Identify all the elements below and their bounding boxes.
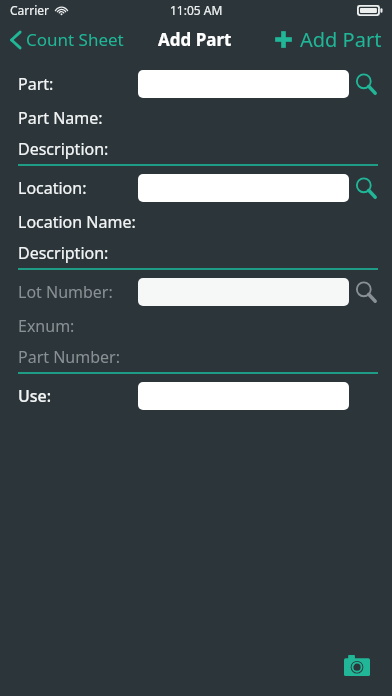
button[interactable]: Search Location:: [355, 177, 377, 199]
staticText: Count Sheet: [26, 28, 124, 51]
staticText: Lot Number:: [18, 281, 113, 303]
button[interactable]: Scan with camera: [340, 648, 374, 682]
button[interactable]: [138, 70, 349, 98]
staticText: Add Part: [158, 28, 232, 51]
staticText: Part Name:: [18, 107, 103, 129]
staticText: Add Part: [300, 26, 382, 53]
button[interactable]: [138, 174, 349, 202]
staticText: Description:: [18, 138, 109, 160]
button[interactable]: [138, 278, 349, 306]
button[interactable]: Search Lot Number:: [355, 281, 377, 303]
staticText: Location:: [18, 177, 87, 199]
staticText: Location Name:: [18, 211, 136, 233]
staticText: Carrier: [10, 2, 50, 18]
button[interactable]: Add Part: [268, 22, 392, 57]
staticText: Use:: [18, 385, 52, 407]
staticText: Description:: [18, 242, 109, 264]
button[interactable]: [138, 382, 349, 410]
staticText: Part Number:: [18, 346, 120, 368]
staticText: Part:: [18, 73, 54, 95]
staticText: 11:05 AM: [170, 2, 223, 18]
button[interactable]: Search Part:: [355, 73, 377, 95]
button[interactable]: Count Sheet: [0, 24, 132, 55]
staticText: Exnum:: [18, 315, 75, 337]
